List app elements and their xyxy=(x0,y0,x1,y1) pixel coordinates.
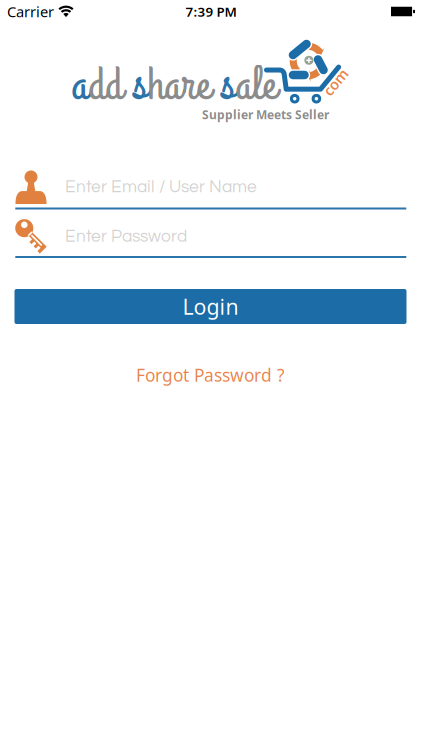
staticText: s xyxy=(220,53,235,118)
button[interactable]: Forgot Password ? xyxy=(136,363,285,386)
staticText: Carrier xyxy=(7,2,54,21)
staticText: Forgot Password ? xyxy=(136,363,285,386)
button[interactable]: Enter Email / User Name xyxy=(15,168,407,209)
staticText: a xyxy=(71,53,88,118)
staticText: Enter Email / User Name xyxy=(65,178,257,196)
staticText: com xyxy=(320,72,350,92)
staticText: dd xyxy=(88,53,122,118)
staticText: Enter Password xyxy=(65,228,187,245)
staticText: Supplier Meets Seller xyxy=(202,106,329,122)
staticText: hare xyxy=(147,53,210,118)
staticText: 7:39 PM xyxy=(185,3,236,20)
staticText: Login xyxy=(182,292,238,321)
button[interactable]: Login xyxy=(14,289,406,324)
button[interactable]: Enter Password xyxy=(15,215,407,258)
staticText: ale xyxy=(235,53,276,118)
staticText: s xyxy=(132,53,147,118)
